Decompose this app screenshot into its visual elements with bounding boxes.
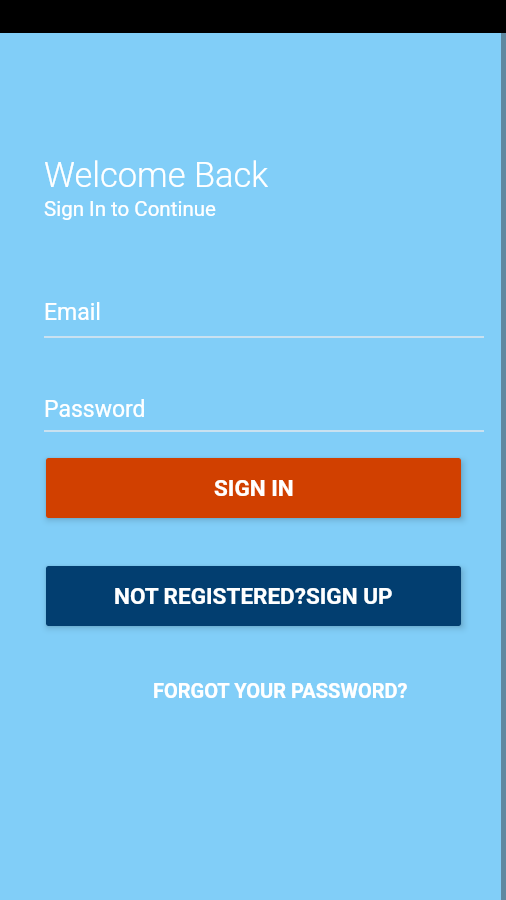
staticText: SIGN IN bbox=[214, 475, 294, 501]
staticText: Sign In to Continue bbox=[44, 197, 216, 221]
staticText: Password bbox=[44, 396, 146, 423]
button[interactable]: Email bbox=[44, 299, 484, 338]
staticText: NOT REGISTERED?SIGN UP bbox=[114, 583, 393, 609]
button[interactable]: SIGN IN bbox=[46, 458, 461, 518]
staticText: Welcome Back bbox=[44, 155, 269, 195]
button[interactable]: FORGOT YOUR PASSWORD? bbox=[145, 674, 416, 707]
staticText: Email bbox=[44, 299, 101, 326]
button[interactable]: Password bbox=[44, 396, 484, 432]
button[interactable]: NOT REGISTERED?SIGN UP bbox=[46, 566, 461, 626]
staticText: FORGOT YOUR PASSWORD? bbox=[153, 679, 408, 702]
